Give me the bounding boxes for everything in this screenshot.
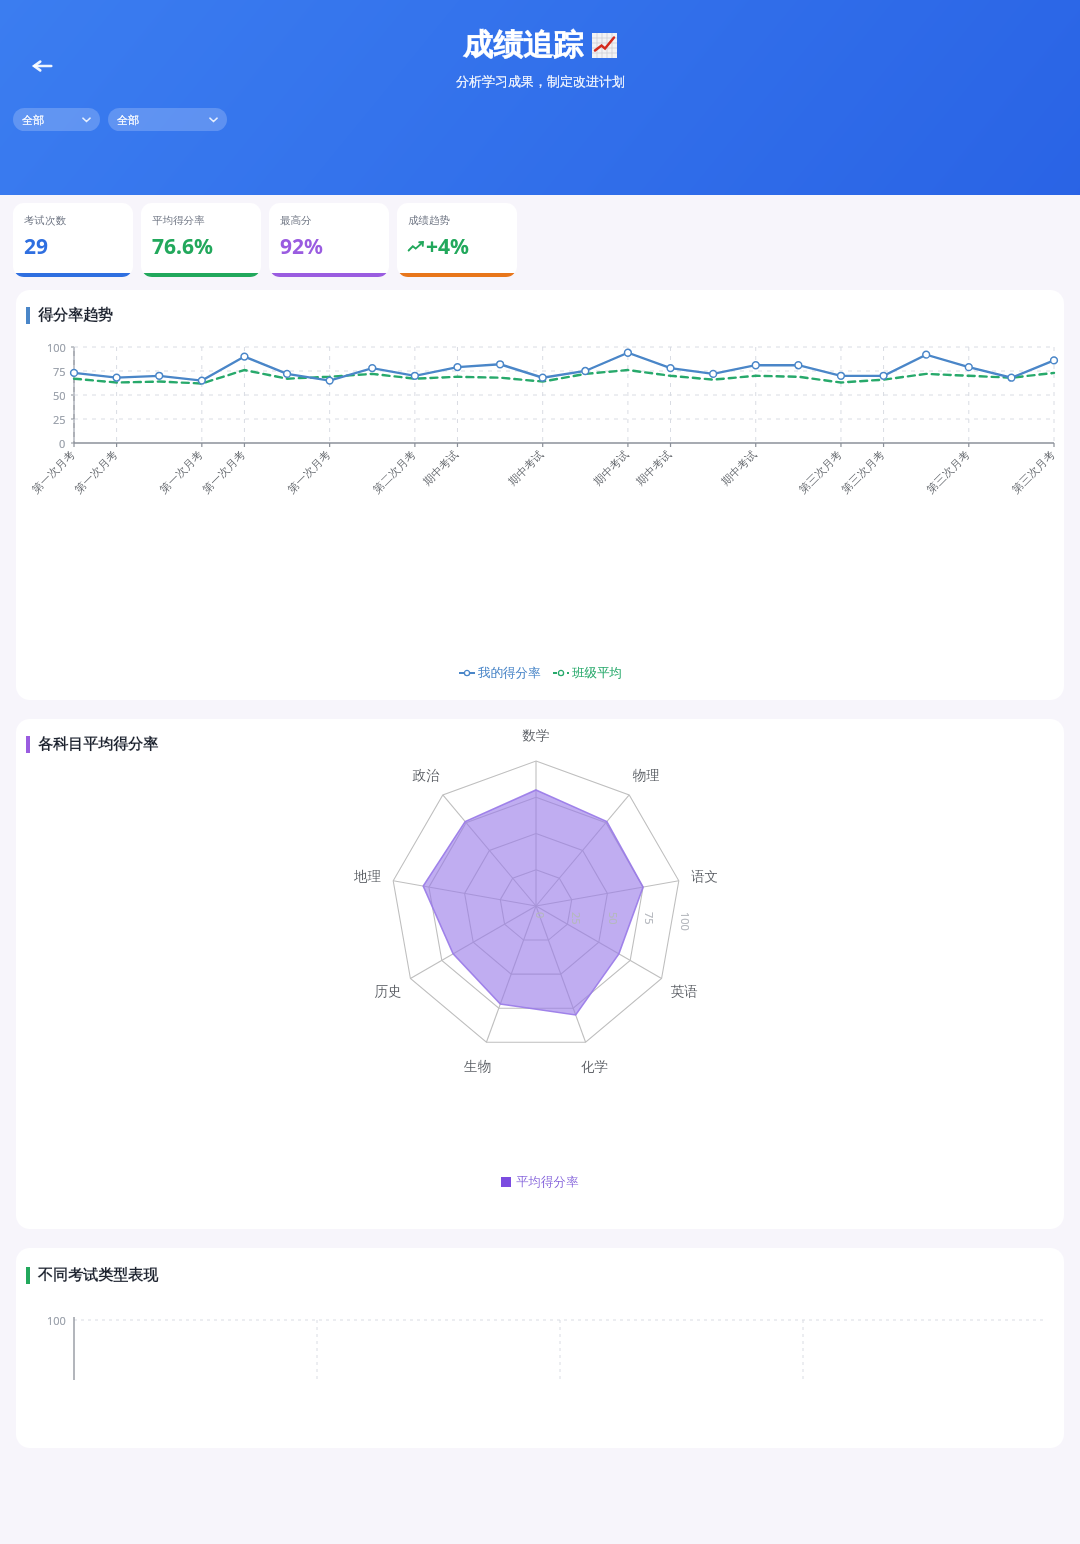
staticText: 全部 xyxy=(117,113,139,127)
button[interactable]: 成绩趋势 xyxy=(397,203,517,277)
staticText: 我的得分率 xyxy=(478,665,541,681)
button[interactable]: 平均得分率 xyxy=(141,203,261,277)
staticText: 29 xyxy=(24,232,49,261)
button[interactable]: 考试次数 xyxy=(13,203,133,277)
staticText: +4% xyxy=(426,232,469,261)
staticText: 成绩追踪 xyxy=(463,26,583,64)
button[interactable]: 平均得分率 xyxy=(501,1174,579,1190)
staticText: 76.6% xyxy=(152,232,213,261)
staticText: 全部 xyxy=(22,113,44,127)
staticText: 分析学习成果，制定改进计划 xyxy=(456,73,625,89)
staticText: 平均得分率 xyxy=(152,214,205,227)
button[interactable]: 全部 xyxy=(108,108,227,131)
button[interactable]: Back xyxy=(22,46,62,86)
staticText: 平均得分率 xyxy=(516,1174,579,1190)
button[interactable]: 全部 xyxy=(13,108,100,131)
staticText: 最高分 xyxy=(280,214,312,227)
button[interactable]: 我的得分率 xyxy=(459,665,541,681)
staticText: 成绩趋势 xyxy=(408,214,450,227)
staticText: 各科目平均得分率 xyxy=(38,735,158,754)
staticText: 不同考试类型表现 xyxy=(38,1266,158,1285)
staticText: 考试次数 xyxy=(24,214,66,227)
staticText: 班级平均 xyxy=(572,665,622,681)
staticText: 92% xyxy=(280,232,323,261)
button[interactable]: 最高分 xyxy=(269,203,389,277)
staticText: 得分率趋势 xyxy=(38,306,113,325)
button[interactable]: 班级平均 xyxy=(553,665,622,681)
